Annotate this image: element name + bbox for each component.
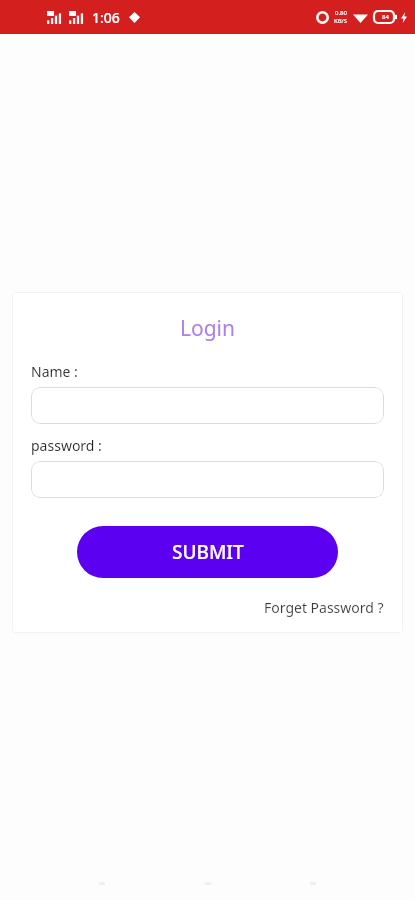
button[interactable] (31, 387, 384, 424)
button[interactable] (31, 461, 384, 498)
staticText: KB/S (334, 17, 348, 25)
staticText: password : (31, 436, 102, 455)
staticText: Login (31, 314, 384, 343)
staticText: 84 (382, 13, 389, 21)
button[interactable]: Forget Password ? (264, 598, 384, 617)
staticText: 0.80 (335, 9, 347, 17)
staticText: SUBMIT (172, 539, 244, 565)
staticText: Name : (31, 362, 78, 381)
staticText: 1:06 (92, 8, 120, 27)
button[interactable]: SUBMIT (77, 526, 338, 578)
